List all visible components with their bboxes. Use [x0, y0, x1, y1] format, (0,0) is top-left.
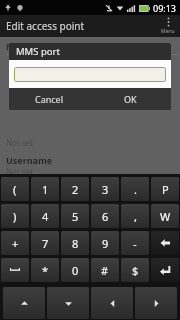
staticText: Name [6, 40, 33, 52]
staticText: . [134, 182, 137, 197]
button[interactable]: Backspace [151, 231, 179, 255]
staticText: * [42, 263, 49, 278]
button[interactable]: - [121, 231, 149, 255]
button[interactable]: ( [1, 177, 29, 201]
staticText: # [101, 263, 109, 278]
staticText: Username [6, 154, 53, 166]
staticText: W [160, 209, 171, 224]
staticText: Not set [6, 166, 34, 174]
button[interactable]: * [31, 258, 59, 282]
staticText: 9 [102, 236, 109, 251]
button[interactable]: 6 [91, 204, 119, 228]
button[interactable]: , [121, 204, 149, 228]
button[interactable]: Menu [156, 15, 180, 37]
button[interactable]: 3 [91, 177, 119, 201]
button[interactable]: P [151, 177, 179, 201]
staticText: - [133, 236, 137, 251]
staticText: 2 [72, 182, 79, 197]
button[interactable]: OK [90, 88, 171, 110]
button[interactable]: Cancel [9, 88, 90, 110]
button[interactable]: 8 [61, 231, 89, 255]
staticText: 4 [42, 209, 49, 224]
staticText: Cancel [35, 93, 64, 105]
button[interactable]: W [151, 204, 179, 228]
button[interactable]: . [121, 177, 149, 201]
button[interactable]: down [47, 287, 89, 319]
button[interactable]: # [91, 258, 119, 282]
button[interactable]: $ [121, 258, 149, 282]
staticText: 3 [102, 182, 109, 197]
button[interactable]: ) [1, 204, 29, 228]
staticText: OK [124, 93, 137, 105]
button[interactable]: + [1, 231, 29, 255]
staticText: ) [13, 209, 17, 224]
button[interactable]: 2 [61, 177, 89, 201]
staticText: 8 [72, 236, 79, 251]
button[interactable]: 0 [61, 258, 89, 282]
staticText: 0 [72, 263, 79, 278]
staticText: ( [13, 182, 17, 197]
staticText: Not set [6, 137, 34, 148]
staticText: 7 [42, 236, 49, 251]
button[interactable]: 5 [61, 204, 89, 228]
staticText: Menu [161, 28, 175, 35]
button[interactable]: right [135, 287, 177, 319]
staticText: , [134, 209, 137, 224]
staticText: 5 [72, 209, 79, 224]
staticText: $ [132, 263, 139, 278]
staticText: 1 [42, 182, 49, 197]
button[interactable]: 7 [31, 231, 59, 255]
button[interactable]: 9 [91, 231, 119, 255]
staticText: 09:13 [153, 2, 177, 14]
staticText: 6 [102, 209, 109, 224]
button[interactable]: Enter [151, 258, 179, 282]
staticText: P [162, 182, 169, 197]
staticText: Edit access point [6, 19, 85, 33]
button[interactable]: left [91, 287, 133, 319]
staticText: + [12, 236, 19, 251]
button[interactable]: up [3, 287, 45, 319]
button[interactable]: Space [1, 258, 29, 282]
button[interactable] [14, 67, 166, 82]
staticText: MMS port [16, 45, 60, 58]
button[interactable]: 4 [31, 204, 59, 228]
button[interactable]: 1 [31, 177, 59, 201]
